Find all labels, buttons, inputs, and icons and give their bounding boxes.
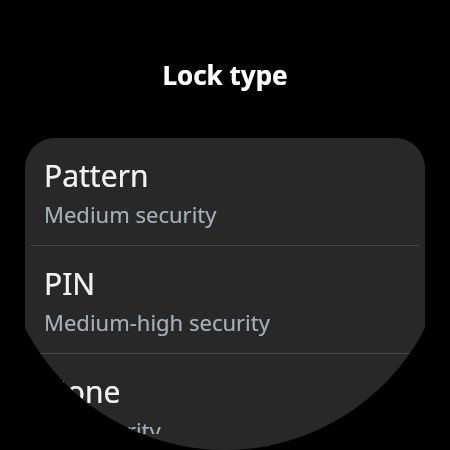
- button[interactable]: PIN: [25, 246, 425, 353]
- staticText: Pattern: [44, 155, 149, 196]
- staticText: Medium security: [44, 199, 217, 229]
- staticText: Medium-high security: [44, 307, 270, 337]
- staticText: None: [44, 371, 121, 412]
- staticText: Lock type: [0, 57, 450, 92]
- button[interactable]: None: [25, 354, 425, 450]
- staticText: PIN: [44, 263, 96, 304]
- staticText: No security: [44, 415, 161, 434]
- button[interactable]: Pattern: [25, 138, 425, 245]
